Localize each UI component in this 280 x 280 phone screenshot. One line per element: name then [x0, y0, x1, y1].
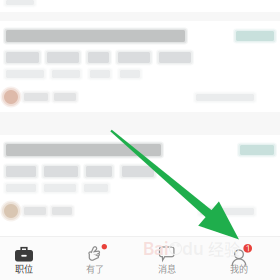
- staticText: 职位: [15, 262, 33, 275]
- staticText: Bai: [143, 238, 169, 259]
- staticText: 1: [246, 243, 249, 253]
- button[interactable]: 有了: [67, 239, 123, 275]
- button[interactable]: 职位: [0, 239, 52, 275]
- staticText: du: [182, 238, 204, 259]
- button[interactable]: 1: [211, 239, 267, 275]
- staticText: 有了: [86, 262, 104, 275]
- button[interactable]: 消息: [139, 239, 195, 275]
- button[interactable]: [0, 21, 280, 112]
- staticText: 经验: [204, 237, 240, 260]
- staticText: 消息: [158, 262, 176, 275]
- button[interactable]: [0, 135, 280, 226]
- staticText: 我的: [230, 262, 248, 275]
